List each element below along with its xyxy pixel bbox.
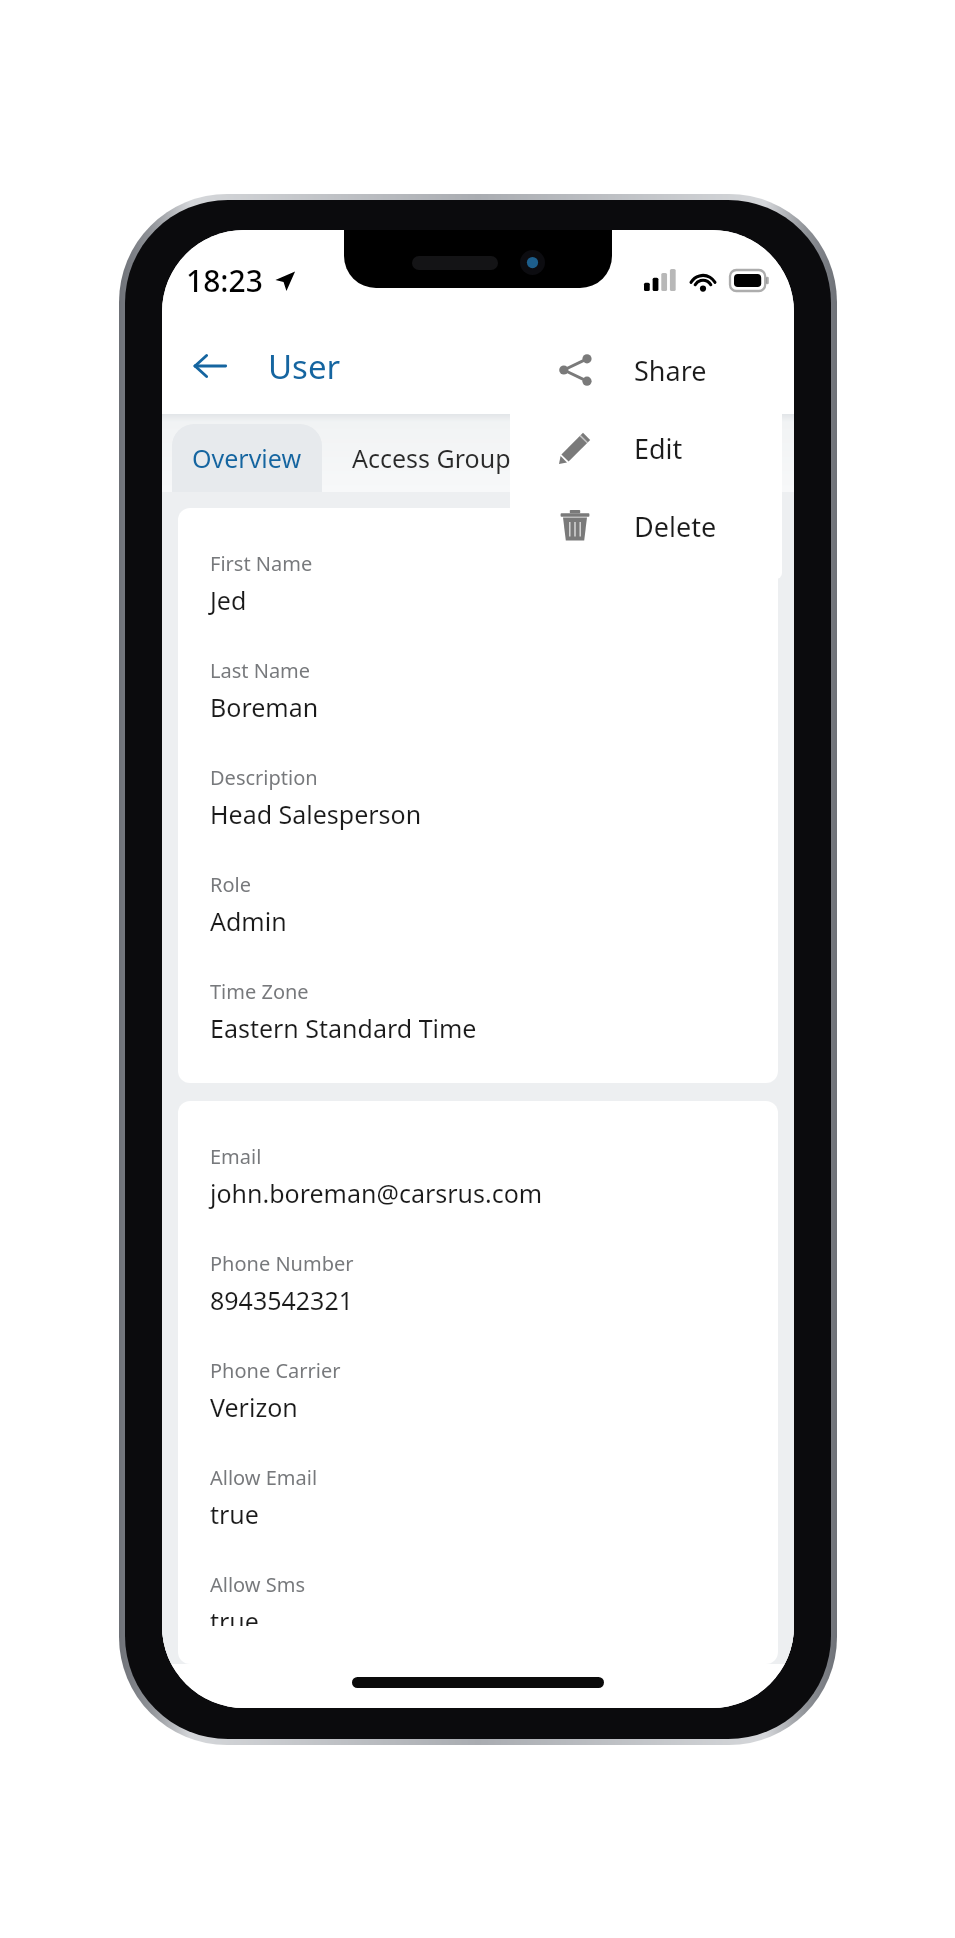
staticText: Email: [210, 1143, 262, 1170]
staticText: true: [210, 1497, 259, 1531]
button[interactable]: Share: [510, 331, 782, 409]
button[interactable]: Delete: [510, 487, 782, 565]
button[interactable]: Back: [178, 334, 242, 398]
staticText: First Name: [210, 550, 313, 577]
staticText: 8943542321: [210, 1283, 354, 1317]
staticText: Boreman: [210, 690, 319, 724]
staticText: Edit: [634, 430, 683, 467]
button[interactable]: Access Groups: [322, 424, 552, 492]
staticText: Verizon: [210, 1390, 298, 1424]
staticText: Delete: [634, 508, 717, 545]
staticText: Role: [210, 871, 251, 898]
staticText: Admin: [210, 904, 287, 938]
staticText: Head Salesperson: [210, 797, 422, 831]
staticText: Phone Carrier: [210, 1357, 341, 1384]
staticText: User: [268, 344, 341, 389]
button[interactable]: Overview: [172, 424, 322, 492]
staticText: Last Name: [210, 657, 311, 684]
staticText: Eastern Standard Time: [210, 1011, 477, 1045]
staticText: Jed: [210, 583, 247, 617]
staticText: Phone Number: [210, 1250, 354, 1277]
staticText: Share: [634, 352, 707, 389]
staticText: Allow Email: [210, 1464, 318, 1491]
staticText: Description: [210, 764, 318, 791]
staticText: true: [210, 1604, 259, 1626]
staticText: 18:23: [186, 260, 263, 301]
staticText: Allow Sms: [210, 1571, 305, 1598]
staticText: Overview: [192, 441, 302, 475]
staticText: Access Groups: [352, 441, 523, 475]
staticText: john.boreman@carsrus.com: [210, 1176, 543, 1210]
staticText: Time Zone: [210, 978, 309, 1005]
button[interactable]: Edit: [510, 409, 782, 487]
